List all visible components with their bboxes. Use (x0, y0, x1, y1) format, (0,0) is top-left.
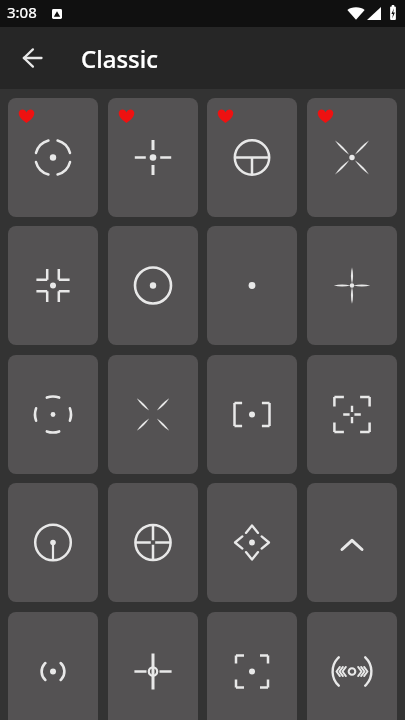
button[interactable]: Reticle 2 (108, 98, 198, 217)
button[interactable]: Reticle 1 (8, 98, 98, 217)
button[interactable]: Reticle 3 (207, 98, 297, 217)
button[interactable]: Reticle 20 (307, 612, 397, 720)
button[interactable]: Reticle 5 (8, 226, 98, 345)
button[interactable]: Reticle 14 (108, 483, 198, 602)
button[interactable]: Reticle 13 (8, 483, 98, 602)
staticText: 3:08 (7, 2, 37, 22)
button[interactable]: Reticle 4 (307, 98, 397, 217)
button[interactable]: Reticle 10 (108, 355, 198, 474)
button[interactable]: Reticle 6 (108, 226, 198, 345)
button[interactable]: Reticle 8 (307, 226, 397, 345)
button[interactable]: Back (0, 27, 62, 89)
button[interactable]: Reticle 17 (8, 612, 98, 720)
button[interactable]: Reticle 15 (207, 483, 297, 602)
button[interactable]: Reticle 9 (8, 355, 98, 474)
staticText: Classic (81, 42, 159, 75)
button[interactable]: Reticle 18 (108, 612, 198, 720)
button[interactable]: Reticle 16 (307, 483, 397, 602)
button[interactable]: Reticle 12 (307, 355, 397, 474)
button[interactable]: Reticle 7 (207, 226, 297, 345)
button[interactable]: Reticle 11 (207, 355, 297, 474)
button[interactable]: Reticle 19 (207, 612, 297, 720)
